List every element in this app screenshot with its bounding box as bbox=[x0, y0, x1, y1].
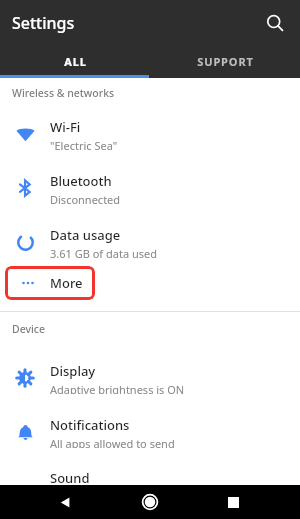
staticText: Disconnected bbox=[50, 192, 121, 204]
button[interactable]: Display bbox=[0, 362, 300, 394]
staticText: Notifications bbox=[50, 416, 130, 434]
staticText: Wi-Fi bbox=[50, 118, 81, 136]
staticText: Bluetooth bbox=[50, 172, 112, 190]
staticText: Display bbox=[50, 362, 96, 380]
button[interactable]: Home bbox=[133, 485, 167, 519]
staticText: Settings bbox=[12, 12, 75, 34]
button[interactable]: Bluetooth bbox=[0, 172, 300, 204]
staticText: Sound bbox=[50, 469, 90, 485]
staticText: All apps allowed to send bbox=[50, 436, 175, 448]
button[interactable]: Search bbox=[260, 8, 290, 38]
staticText: Adaptive brightness is ON bbox=[50, 382, 185, 394]
button[interactable]: Back bbox=[48, 485, 82, 519]
button[interactable]: Data usage bbox=[0, 226, 300, 258]
button[interactable]: More bbox=[5, 266, 95, 300]
button[interactable]: Recent apps bbox=[216, 485, 250, 519]
staticText: SUPPORT bbox=[197, 54, 254, 69]
button[interactable]: SUPPORT bbox=[150, 45, 300, 78]
staticText: ALL bbox=[64, 54, 87, 69]
staticText: Device bbox=[12, 322, 46, 336]
button[interactable]: Wi-Fi bbox=[0, 118, 300, 150]
staticText: "Electric Sea" bbox=[50, 138, 118, 150]
staticText: Data usage bbox=[50, 226, 121, 244]
staticText: 3.61 GB of data used bbox=[50, 246, 157, 258]
button[interactable]: ALL bbox=[0, 45, 150, 78]
staticText: More bbox=[50, 274, 83, 292]
button[interactable]: Notifications bbox=[0, 416, 300, 448]
staticText: Wireless & networks bbox=[12, 86, 115, 100]
